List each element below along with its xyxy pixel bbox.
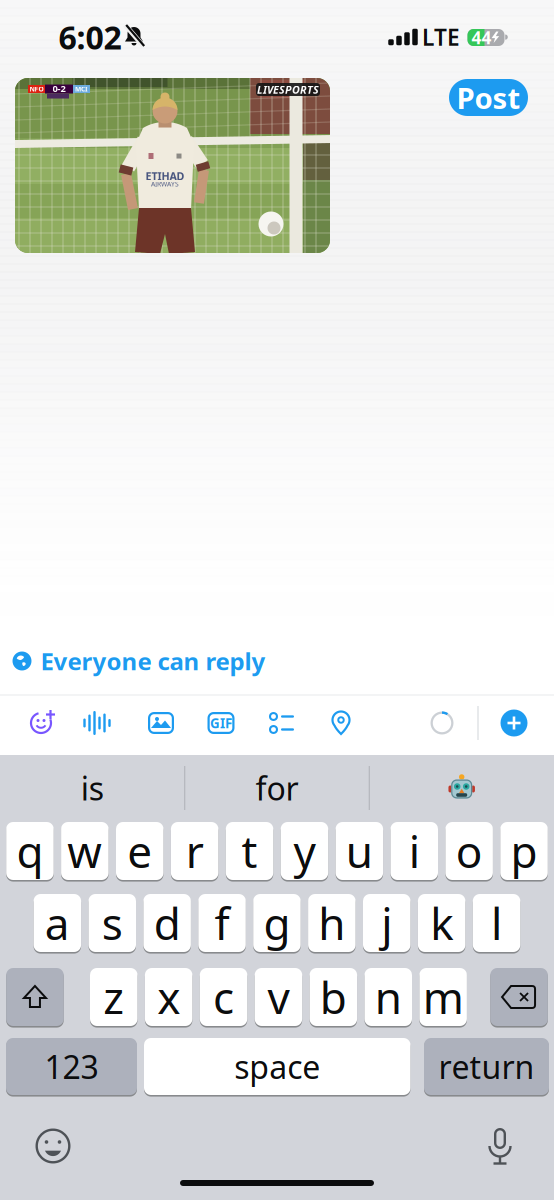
button[interactable]: Emoji — [23, 1116, 83, 1176]
button[interactable]: s — [88, 893, 136, 953]
staticText: Everyone can reply — [40, 645, 265, 677]
staticText: s — [102, 894, 123, 952]
staticText: k — [430, 894, 453, 952]
button[interactable]: i — [390, 821, 438, 881]
button[interactable]: b — [310, 967, 357, 1027]
staticText: o — [456, 822, 483, 880]
staticText: AIRWAYS — [151, 180, 179, 188]
staticText: d — [154, 894, 181, 952]
button[interactable]: z — [90, 967, 137, 1027]
staticText: is — [81, 767, 104, 809]
button[interactable]: u — [336, 821, 383, 881]
staticText: for — [255, 767, 298, 809]
button[interactable]: c — [200, 967, 247, 1027]
button[interactable]: x — [145, 967, 192, 1027]
button[interactable]: Edit with AI — [20, 701, 64, 745]
staticText: x — [157, 968, 180, 1026]
staticText: MCI — [75, 85, 88, 93]
button[interactable]: f — [198, 893, 246, 953]
button[interactable]: v — [255, 967, 302, 1027]
button[interactable]: h — [308, 893, 356, 953]
staticText: ETIHAD — [145, 169, 184, 183]
button[interactable]: Delete — [490, 967, 548, 1027]
staticText: v — [267, 968, 289, 1026]
button[interactable]: e — [116, 821, 163, 881]
staticText: n — [375, 968, 402, 1026]
button[interactable]: Dictation — [470, 1116, 530, 1176]
button[interactable]: Record voice — [75, 701, 119, 745]
staticText: p — [510, 822, 537, 880]
button[interactable]: y — [281, 821, 328, 881]
staticText: c — [213, 968, 234, 1026]
staticText: f — [214, 894, 229, 952]
staticText: w — [67, 822, 102, 880]
staticText: GIF — [210, 714, 232, 732]
button[interactable]: Add photos or video — [139, 701, 183, 745]
staticText: Post — [456, 78, 520, 117]
button[interactable]: n — [364, 967, 412, 1027]
staticText: q — [16, 822, 43, 880]
staticText: y — [293, 822, 315, 880]
staticText: 6:02 — [58, 16, 121, 58]
button[interactable]: p — [500, 821, 548, 881]
staticText: return — [438, 1045, 534, 1088]
staticText: b — [320, 968, 347, 1026]
button[interactable]: Add poll — [259, 701, 303, 745]
staticText: a — [45, 894, 70, 952]
button[interactable]: q — [6, 821, 54, 881]
button[interactable]: m — [419, 967, 467, 1027]
button[interactable]: j — [363, 893, 410, 953]
staticText: j — [381, 894, 392, 952]
staticText: 0-2 — [52, 82, 65, 95]
staticText: i — [409, 822, 420, 880]
button[interactable]: robot emoji suggestion — [372, 760, 552, 816]
button[interactable]: for — [187, 760, 367, 816]
button[interactable]: 123 — [6, 1037, 137, 1096]
button[interactable]: return — [424, 1037, 549, 1096]
staticText: space — [234, 1045, 320, 1088]
button[interactable]: Post — [449, 79, 528, 116]
button[interactable]: is — [2, 760, 182, 816]
staticText: u — [346, 822, 373, 880]
staticText: z — [103, 968, 124, 1026]
staticText: 44 — [471, 26, 491, 49]
button[interactable]: a — [34, 893, 81, 953]
button[interactable]: w — [61, 821, 109, 881]
button[interactable]: r — [171, 821, 218, 881]
staticText: e — [127, 822, 152, 880]
button[interactable]: Tag location — [319, 701, 363, 745]
staticText: h — [318, 894, 345, 952]
button[interactable]: g — [253, 893, 301, 953]
staticText: g — [263, 894, 290, 952]
staticText: LIVESPORTS — [257, 82, 319, 97]
button[interactable]: t — [226, 821, 273, 881]
button[interactable]: d — [143, 893, 191, 953]
staticText: r — [186, 822, 204, 880]
staticText: LTE — [422, 22, 460, 52]
button[interactable]: Add another post — [494, 703, 534, 743]
button[interactable]: Shift — [6, 967, 64, 1027]
staticText: m — [423, 968, 464, 1026]
button[interactable]: Attached video — [15, 78, 330, 253]
button[interactable]: k — [418, 893, 465, 953]
button[interactable]: l — [473, 893, 520, 953]
staticText: t — [241, 822, 257, 880]
staticText: l — [491, 894, 502, 952]
staticText: 123 — [44, 1045, 98, 1088]
button[interactable]: Add a GIF — [199, 701, 243, 745]
button[interactable]: o — [445, 821, 493, 881]
staticText: NFO — [29, 85, 43, 93]
button[interactable]: Everyone can reply — [0, 643, 554, 679]
button[interactable]: space — [144, 1037, 410, 1096]
